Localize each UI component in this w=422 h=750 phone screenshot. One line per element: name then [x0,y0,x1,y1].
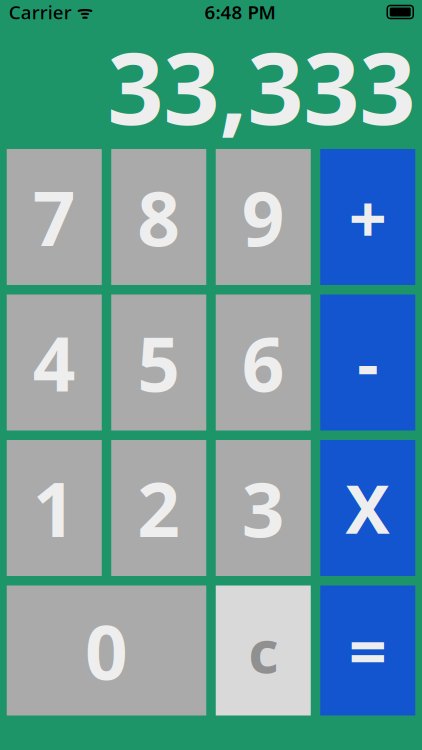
button[interactable]: 1 [7,440,102,576]
staticText: 6:48 PM [204,0,275,24]
staticText: - [357,318,378,407]
button[interactable]: 0 [7,585,206,715]
button[interactable]: = [320,585,415,715]
button[interactable]: 4 [7,294,102,430]
button[interactable]: 7 [7,149,102,285]
staticText: Carrier [9,0,72,24]
staticText: 0 [85,601,128,700]
staticText: + [349,173,387,261]
button[interactable]: 2 [111,440,206,576]
button[interactable]: - [320,294,415,430]
staticText: c [248,611,278,689]
staticText: 4 [33,313,76,412]
staticText: 7 [33,167,76,267]
staticText: ᯤ [72,0,93,23]
staticText: 3 [242,458,285,558]
staticText: 33,333 [107,21,415,152]
staticText: 9 [242,167,285,267]
button[interactable]: 3 [216,440,311,576]
staticText: 6 [242,313,285,412]
button[interactable]: c [216,585,311,715]
button[interactable]: X [320,440,415,576]
button[interactable]: 5 [111,294,206,430]
staticText: 1 [33,458,76,558]
staticText: 2 [137,458,180,558]
button[interactable]: 8 [111,149,206,285]
staticText: X [345,464,390,552]
staticText: = [349,606,387,695]
button[interactable]: 6 [216,294,311,430]
staticText: 8 [137,167,180,267]
button[interactable]: + [320,149,415,285]
button[interactable]: 9 [216,149,311,285]
staticText: 5 [137,313,180,412]
